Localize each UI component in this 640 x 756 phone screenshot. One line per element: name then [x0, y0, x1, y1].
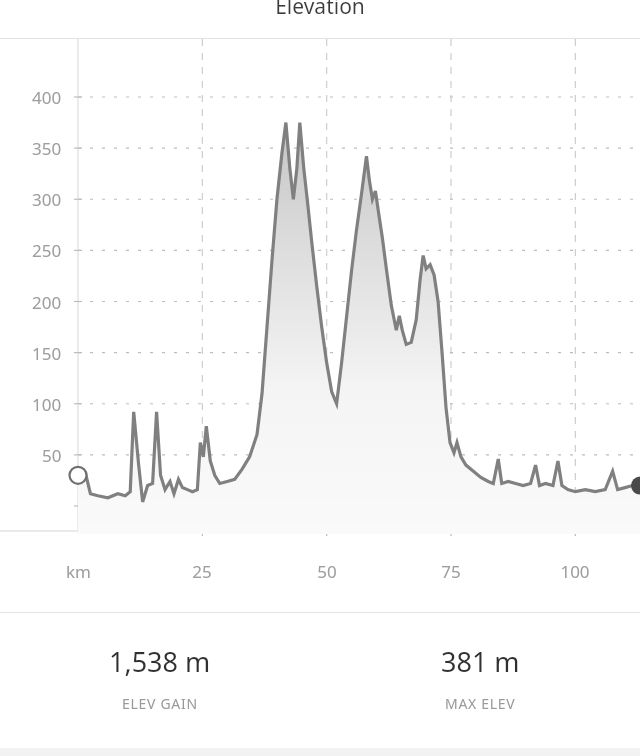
button[interactable]: 381 m	[320, 613, 640, 748]
staticText: ELEV GAIN	[122, 694, 198, 713]
staticText: 100	[32, 393, 62, 416]
staticText: 250	[32, 239, 62, 262]
staticText: MAX ELEV	[445, 694, 516, 713]
staticText: 400	[32, 86, 62, 109]
staticText: 1,538 m	[109, 643, 211, 680]
staticText: 381 m	[441, 643, 520, 680]
staticText: 150	[32, 342, 62, 365]
staticText: 100	[560, 560, 590, 583]
staticText: km	[66, 560, 91, 583]
staticText: 25	[192, 560, 212, 583]
staticText: 200	[32, 291, 62, 314]
button[interactable]: 1,538 m	[0, 613, 320, 748]
staticText: 350	[32, 137, 62, 160]
staticText: 50	[317, 560, 337, 583]
staticText: Elevation	[275, 0, 365, 21]
staticText: 50	[42, 444, 62, 467]
staticText: 75	[441, 560, 461, 583]
staticText: 300	[32, 188, 62, 211]
